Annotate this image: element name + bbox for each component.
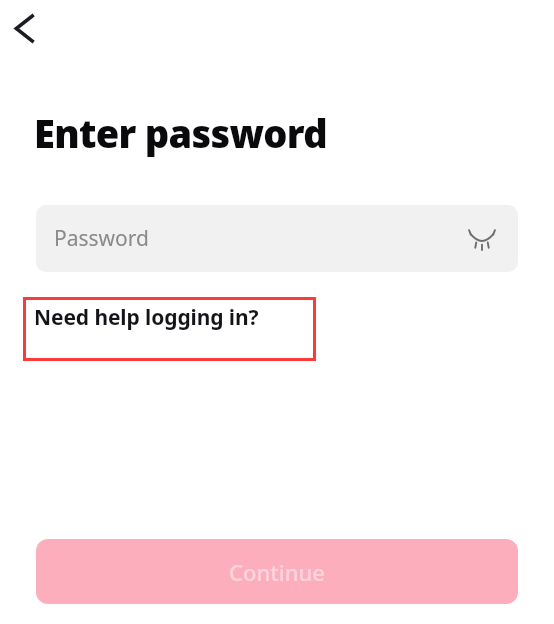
staticText: Need help logging in? bbox=[34, 303, 259, 332]
staticText: Continue bbox=[229, 557, 325, 587]
button[interactable]: Continue bbox=[36, 539, 518, 604]
button[interactable]: Show password bbox=[466, 223, 498, 255]
staticText: Enter password bbox=[34, 107, 327, 159]
staticText: Password bbox=[54, 224, 149, 253]
button[interactable]: Back bbox=[1, 5, 48, 52]
button[interactable]: Need help logging in? bbox=[23, 297, 316, 361]
button[interactable]: Password bbox=[36, 205, 518, 272]
